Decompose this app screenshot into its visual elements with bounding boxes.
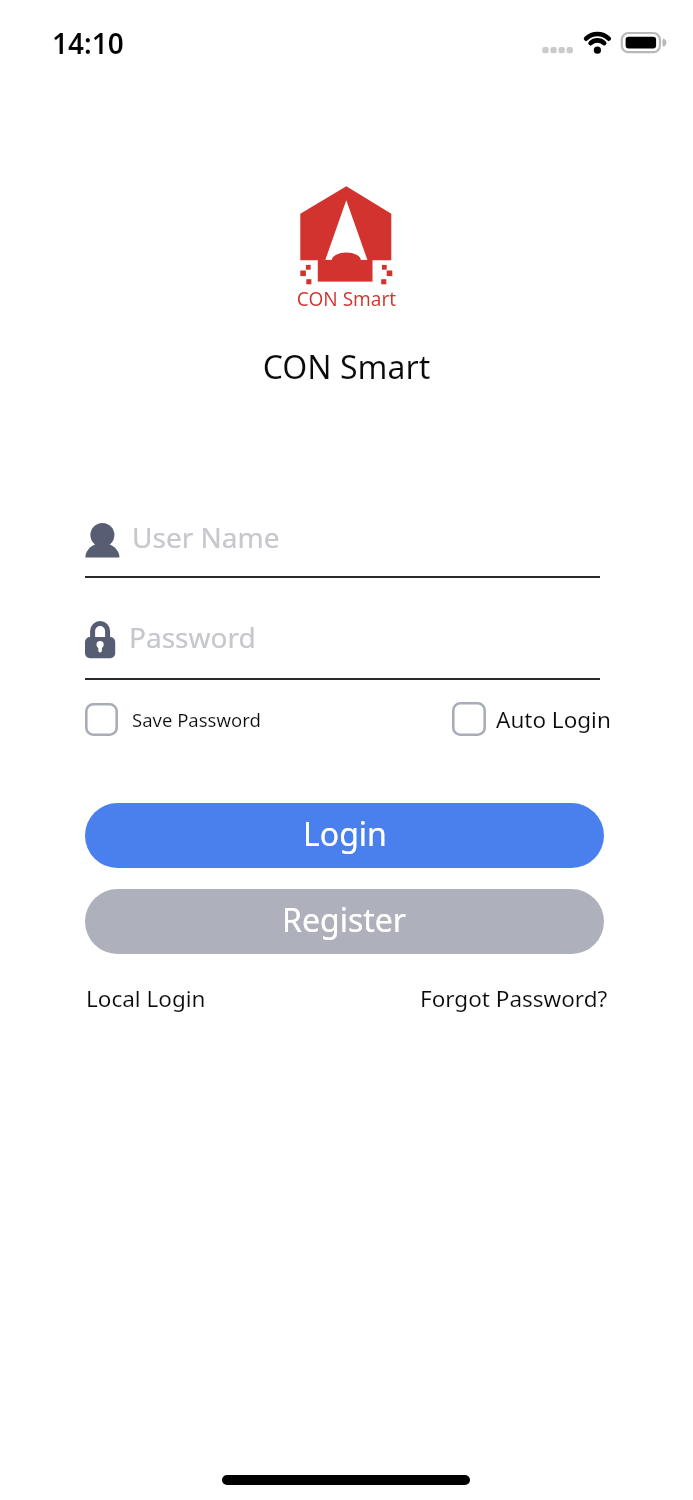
button[interactable]: Save Password	[85, 702, 261, 736]
staticText: Save Password	[132, 707, 261, 732]
staticText: Login	[303, 812, 387, 856]
button[interactable]: Login	[85, 803, 604, 868]
staticText: Forgot Password?	[420, 983, 608, 1014]
button[interactable]: User Name	[85, 512, 600, 562]
button[interactable]: Password	[85, 612, 600, 662]
staticText: Password	[129, 618, 256, 656]
staticText: CON Smart	[0, 345, 693, 389]
button[interactable]: Auto Login	[452, 702, 611, 736]
button[interactable]: Forgot Password?	[330, 983, 608, 1014]
button[interactable]: Register	[85, 889, 604, 954]
staticText: 14:10	[52, 24, 124, 62]
staticText: CON Smart	[0, 286, 693, 312]
staticText: Auto Login	[496, 704, 611, 735]
staticText: Register	[282, 898, 407, 942]
staticText: User Name	[132, 518, 280, 556]
button[interactable]: Local Login	[86, 983, 206, 1014]
staticText: Local Login	[86, 983, 206, 1014]
